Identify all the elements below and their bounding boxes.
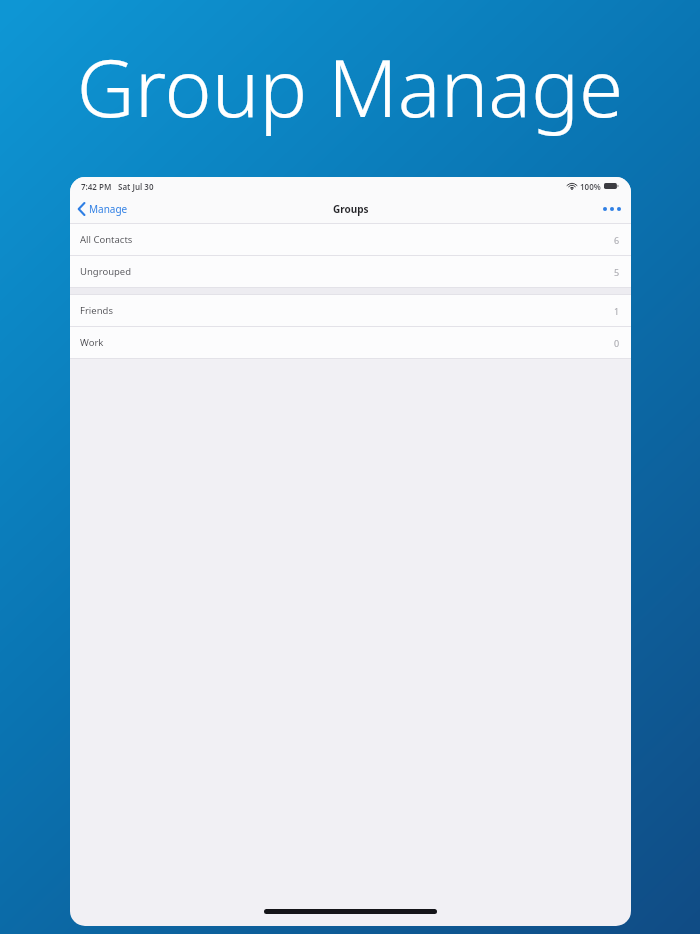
staticText: Group Manage — [0, 31, 700, 140]
button[interactable]: More options — [593, 195, 631, 223]
staticText: 5 — [614, 266, 620, 278]
button[interactable]: Manage — [70, 195, 138, 223]
staticText: All Contacts — [80, 233, 133, 246]
button[interactable]: All Contacts — [70, 224, 631, 255]
button[interactable]: Friends — [70, 295, 631, 326]
staticText: Sat Jul 30 — [118, 181, 154, 192]
staticText: Friends — [80, 304, 113, 317]
staticText: 1 — [614, 305, 620, 317]
staticText: Manage — [89, 202, 128, 216]
staticText: Ungrouped — [80, 265, 132, 278]
staticText: 7:42 PM — [81, 181, 112, 192]
staticText: 6 — [614, 234, 620, 246]
staticText: 100% — [580, 181, 601, 192]
button[interactable]: Ungrouped — [70, 256, 631, 287]
staticText: Work — [80, 336, 104, 349]
staticText: Groups — [333, 202, 369, 216]
button[interactable]: Work — [70, 327, 631, 358]
staticText: 0 — [614, 337, 620, 349]
